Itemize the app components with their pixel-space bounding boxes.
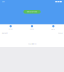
button[interactable]: More [43, 25, 64, 30]
button[interactable]: Send [21, 25, 43, 30]
staticText: See All [58, 32, 62, 34]
staticText: No activity yet [28, 43, 36, 45]
button[interactable]: See All [58, 32, 62, 34]
staticText: Recent [2, 32, 8, 34]
button[interactable]: Get Started [23, 10, 41, 14]
staticText: Scan [9, 28, 13, 30]
staticText: 9:41 [2, 1, 5, 3]
staticText: Send [30, 28, 34, 30]
button[interactable]: Scan [0, 25, 21, 30]
staticText: More [51, 28, 55, 30]
staticText: Get Started [27, 11, 37, 13]
